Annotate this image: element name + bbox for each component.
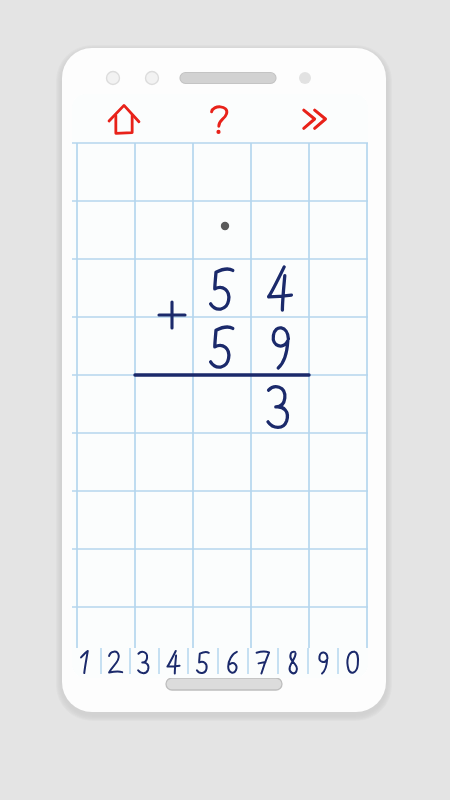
button[interactable]: Digit 0 <box>338 648 368 674</box>
button[interactable]: Digit 7 <box>248 648 278 674</box>
button[interactable]: Digit 8 <box>278 648 308 674</box>
button[interactable]: Home <box>72 94 176 143</box>
button[interactable]: Help <box>176 94 264 143</box>
button[interactable]: Digit 4 <box>159 648 188 674</box>
button[interactable]: Digit 3 <box>130 648 159 674</box>
button[interactable] <box>72 143 368 648</box>
button[interactable]: Digit 2 <box>101 648 130 674</box>
button[interactable]: Digit 1 <box>72 648 101 674</box>
button[interactable]: Next <box>264 94 368 143</box>
button[interactable]: Digit 5 <box>188 648 218 674</box>
button[interactable]: Digit 9 <box>308 648 338 674</box>
button[interactable]: Digit 6 <box>218 648 248 674</box>
